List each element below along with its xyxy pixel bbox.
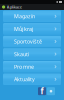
button[interactable]: Sportoviště — [3, 36, 61, 47]
staticText: Magazín — [14, 13, 35, 20]
staticText: Skauti — [14, 51, 29, 58]
staticText: Můj kraj — [14, 25, 33, 32]
button[interactable]: Magazín — [3, 11, 61, 22]
button[interactable]: Skauti — [3, 48, 61, 60]
staticText: f — [40, 86, 43, 96]
button[interactable]: Facebook — [38, 87, 46, 95]
staticText: Aplikace — [7, 4, 22, 10]
button[interactable]: Share — [47, 87, 55, 95]
button[interactable]: Aktuality — [3, 74, 61, 85]
button[interactable]: Můj kraj — [3, 23, 61, 35]
staticText: Aktuality — [14, 76, 35, 83]
button[interactable]: Pro mne — [3, 61, 61, 72]
staticText: Sportoviště — [14, 38, 42, 45]
staticText: Pro mne — [14, 63, 34, 70]
